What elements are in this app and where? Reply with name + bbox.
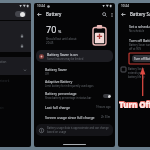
staticText: 20:45 (46, 41, 54, 45)
staticText: Screen usage since full charge (45, 115, 95, 120)
staticText: Turn Off Batt (119, 99, 150, 110)
staticText: Battery Saver (130, 11, 150, 17)
staticText: off at 90% (129, 47, 142, 51)
button[interactable]: Toggle (0, 11, 26, 17)
staticText: Some features may be limited (47, 57, 84, 61)
staticText: Turn Off Batt (120, 98, 150, 109)
button[interactable]: Adaptive Battery (45, 78, 111, 89)
staticText: Set a schedule (129, 24, 150, 29)
staticText: Turn Off Batt (119, 99, 150, 110)
staticText: Adaptive Battery (45, 79, 73, 84)
button[interactable]: More options (108, 11, 115, 18)
button[interactable]: Battery Saver (45, 66, 111, 77)
button[interactable]: Battery usage data is approximate and ca… (36, 124, 113, 136)
staticText: 9 hours ago (96, 105, 111, 109)
button[interactable]: Battery Saver is on (36, 50, 113, 62)
staticText: Last full charge (45, 105, 71, 110)
button[interactable]: Turn off Battery Saver (132, 55, 150, 62)
staticText: Turn Off Batt (120, 99, 150, 110)
staticText: 10:24 (37, 4, 46, 8)
button[interactable]: Locked (0, 41, 24, 51)
staticText: Battery (46, 11, 62, 17)
staticText: based on usage (47, 130, 67, 134)
staticText: Battery Saver is on (47, 52, 78, 57)
staticText: Battery Saver turns (129, 43, 150, 47)
staticText: Battery Saver (45, 67, 67, 72)
button[interactable]: Search (100, 10, 108, 18)
staticText: Battery Saver (128, 67, 145, 71)
button[interactable]: Last full charge (45, 102, 111, 112)
button[interactable]: Battery percentage (45, 90, 111, 101)
staticText: Battery usage data is approximate and ca… (47, 126, 109, 130)
staticText: Turn Off Batt (119, 99, 150, 110)
button[interactable]: Screen usage since full charge (45, 112, 111, 122)
staticText: Show battery percentage in status bar (45, 96, 92, 100)
staticText: Battery percentage (45, 91, 77, 96)
staticText: 10:24 (121, 4, 130, 8)
staticText: 70 (46, 23, 57, 35)
button[interactable]: Notification (0, 60, 31, 64)
staticText: battery life by (128, 75, 145, 79)
button[interactable]: Turn off Battery Saver (129, 38, 150, 51)
staticText: Off (45, 72, 49, 76)
staticText: Turn off Battery Saver (134, 57, 150, 61)
staticText: Turn Off Batt (120, 99, 150, 110)
staticText: % (58, 29, 62, 34)
staticText: extends your (128, 71, 144, 75)
staticText: Turn Off Batt (119, 98, 150, 109)
staticText: Turn Off Batt (119, 99, 150, 110)
staticText: Use again (0, 106, 4, 110)
staticText: Notification (0, 60, 7, 64)
button[interactable]: Back (119, 10, 128, 19)
staticText: Turn Off Batt (119, 99, 150, 110)
staticText: No schedule (129, 29, 145, 33)
staticText: 2h 30m (101, 115, 111, 119)
staticText: Wi-Fi network (0, 79, 10, 83)
staticText: Limit battery for infrequently used apps (45, 84, 94, 88)
button[interactable]: Back (35, 10, 44, 19)
staticText: Should last until about (46, 37, 77, 41)
staticText: Turn off Battery Saver (129, 38, 150, 43)
button[interactable]: Set a schedule (129, 24, 150, 33)
staticText: Turn Off Batt (119, 98, 150, 109)
button[interactable]: Locked (0, 31, 24, 41)
